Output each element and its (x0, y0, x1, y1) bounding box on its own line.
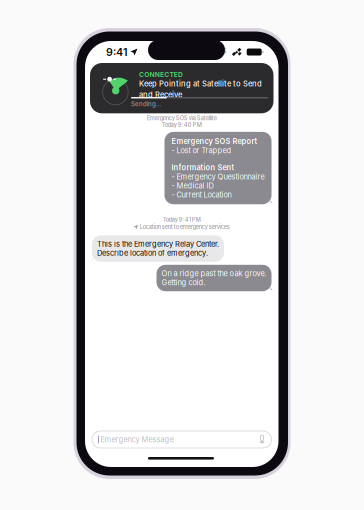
button[interactable]: Emergency Message (85, 431, 278, 467)
staticText: Describe location of emergency. (97, 249, 208, 258)
staticText: Keep Pointing at Satellite to Send and R… (139, 79, 262, 99)
staticText: Getting cold. (161, 278, 205, 287)
staticText: - Emergency Questionnaire (171, 172, 264, 181)
staticText: Today 9:41 PM (163, 216, 201, 223)
staticText: This is the Emergency Relay Center. (97, 239, 219, 248)
staticText: Location sent to emergency services (140, 223, 230, 230)
staticText: CONNECTED (139, 70, 183, 79)
staticText: 9:41 (106, 45, 128, 58)
staticText: Today 9:40 PM (162, 122, 202, 128)
staticText: On a ridge past the oak grove. (161, 269, 266, 278)
staticText: Emergency SOS via Satellite (147, 115, 217, 122)
staticText: SOS (211, 47, 227, 56)
staticText: - Lost or Trapped (171, 146, 231, 155)
staticText: Emergency Message (100, 435, 173, 444)
staticText: - Medical ID (171, 181, 213, 190)
staticText: - Current Location (171, 190, 231, 199)
staticText: Sending… (131, 100, 161, 108)
button[interactable]: CONNECTED (85, 63, 278, 113)
staticText: Information Sent (171, 163, 234, 172)
staticText: Emergency SOS Report (171, 137, 257, 146)
